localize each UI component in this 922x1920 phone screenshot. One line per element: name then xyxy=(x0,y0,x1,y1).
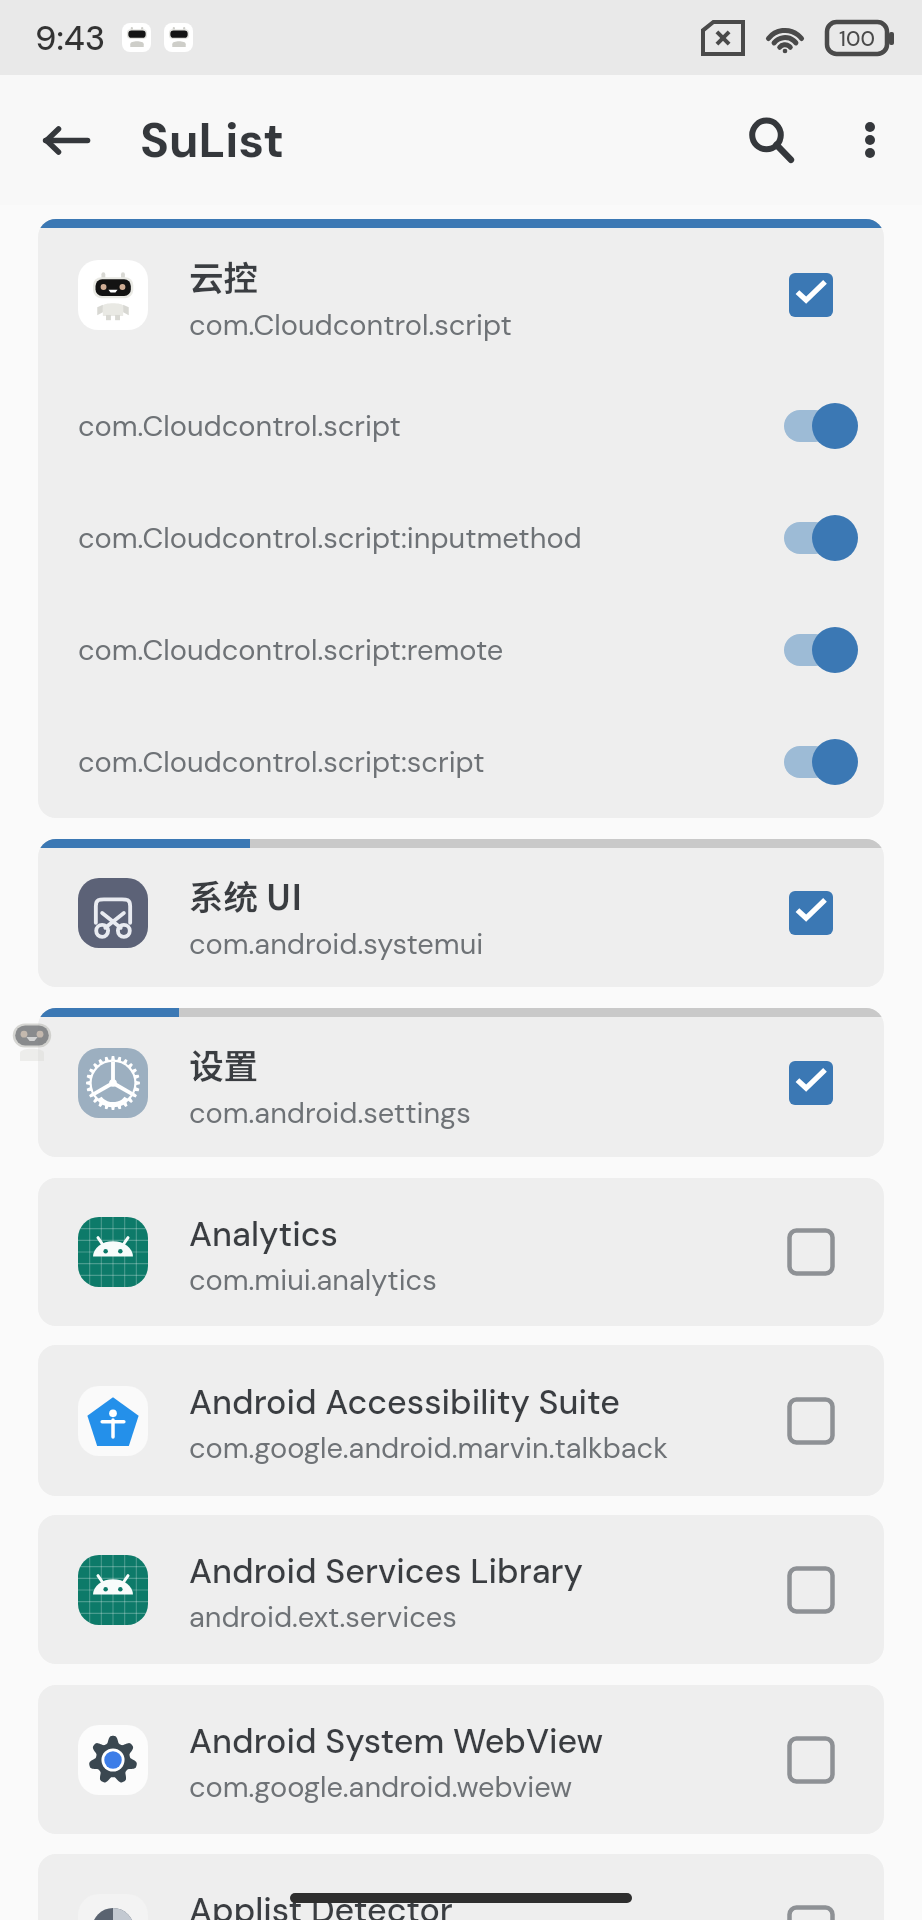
staticText: com.miui.analytics xyxy=(189,1261,437,1299)
button[interactable]: Analytics xyxy=(38,1178,884,1326)
button[interactable]: Toggle selection xyxy=(789,1061,833,1105)
staticText: com.google.android.webview xyxy=(189,1768,573,1806)
button[interactable]: Back xyxy=(30,104,102,176)
button[interactable]: Search xyxy=(736,104,808,176)
staticText: com.android.systemui xyxy=(189,925,484,963)
staticText: android.ext.services xyxy=(189,1598,457,1636)
button[interactable]: Toggle selection xyxy=(789,1399,833,1443)
staticText: 云控 xyxy=(189,251,258,301)
button[interactable]: Toggle selection xyxy=(789,891,833,935)
staticText: 100 xyxy=(839,25,875,52)
button[interactable]: Assistant xyxy=(12,1021,52,1073)
staticText: 设置 xyxy=(189,1039,258,1089)
button[interactable]: com.Cloudcontrol.script:inputmethod xyxy=(38,482,884,594)
button[interactable]: 系统 UI xyxy=(38,839,884,987)
staticText: Android Services Library xyxy=(189,1549,584,1593)
button[interactable]: Toggle selection xyxy=(789,273,833,317)
staticText: com.android.settings xyxy=(189,1094,471,1132)
button[interactable]: Toggle selection xyxy=(789,1568,833,1612)
button[interactable]: Process switch xyxy=(784,625,858,675)
button[interactable]: 设置 xyxy=(38,1008,884,1157)
button[interactable]: Android Services Library xyxy=(38,1515,884,1664)
staticText: Applist Detector xyxy=(189,1888,453,1920)
staticText: 系统 UI xyxy=(189,870,303,920)
button[interactable]: Applist Detector xyxy=(38,1854,884,1920)
staticText: com.Cloudcontrol.script:inputmethod xyxy=(78,519,784,557)
button[interactable]: Android Accessibility Suite xyxy=(38,1345,884,1496)
staticText: SuList xyxy=(140,109,285,171)
button[interactable]: Process switch xyxy=(784,737,858,787)
other: No SIM card xyxy=(703,22,743,54)
staticText: Android Accessibility Suite xyxy=(189,1380,620,1424)
staticText: com.Cloudcontrol.script:script xyxy=(78,743,784,781)
staticText: com.Cloudcontrol.script:remote xyxy=(78,631,784,669)
staticText: Android System WebView xyxy=(189,1719,604,1763)
button[interactable]: Toggle selection xyxy=(789,1738,833,1782)
button[interactable]: Toggle selection xyxy=(789,1230,833,1274)
button[interactable]: Android System WebView xyxy=(38,1685,884,1834)
staticText: com.Cloudcontrol.script xyxy=(78,407,784,445)
staticText: com.google.android.marvin.talkback xyxy=(189,1429,668,1467)
staticText: 9:43 xyxy=(35,16,106,60)
button[interactable]: 云控 xyxy=(38,219,884,818)
other: Wi-Fi xyxy=(764,22,806,54)
button[interactable]: com.Cloudcontrol.script:remote xyxy=(38,594,884,706)
button[interactable]: Process switch xyxy=(784,401,858,451)
button[interactable]: Process switch xyxy=(784,513,858,563)
staticText: com.Cloudcontrol.script xyxy=(189,306,512,344)
button[interactable]: Toggle selection xyxy=(789,1907,833,1920)
button[interactable]: com.Cloudcontrol.script:script xyxy=(38,706,884,818)
staticText: Analytics xyxy=(189,1212,338,1256)
button[interactable]: com.Cloudcontrol.script xyxy=(38,370,884,482)
button[interactable]: More options xyxy=(848,118,892,162)
